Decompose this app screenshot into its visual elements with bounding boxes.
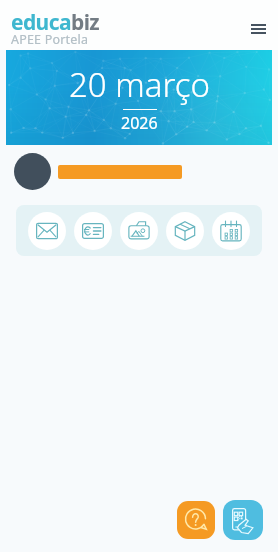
button[interactable]: Packages (166, 212, 204, 250)
button[interactable]: Billing (74, 212, 112, 250)
button[interactable]: Messages (28, 212, 66, 250)
button[interactable]: Calendar (212, 212, 250, 250)
button[interactable]: Photos (120, 212, 158, 250)
staticText: 20 março (69, 62, 210, 107)
staticText: APEE Portela (11, 31, 89, 44)
staticText: biz (71, 8, 100, 37)
staticText: 2026 (121, 112, 158, 134)
staticText: educa (11, 8, 71, 37)
button[interactable]: Menu (241, 12, 275, 46)
button[interactable]: Help (177, 501, 215, 539)
button[interactable]: Scan QR code (223, 500, 263, 540)
